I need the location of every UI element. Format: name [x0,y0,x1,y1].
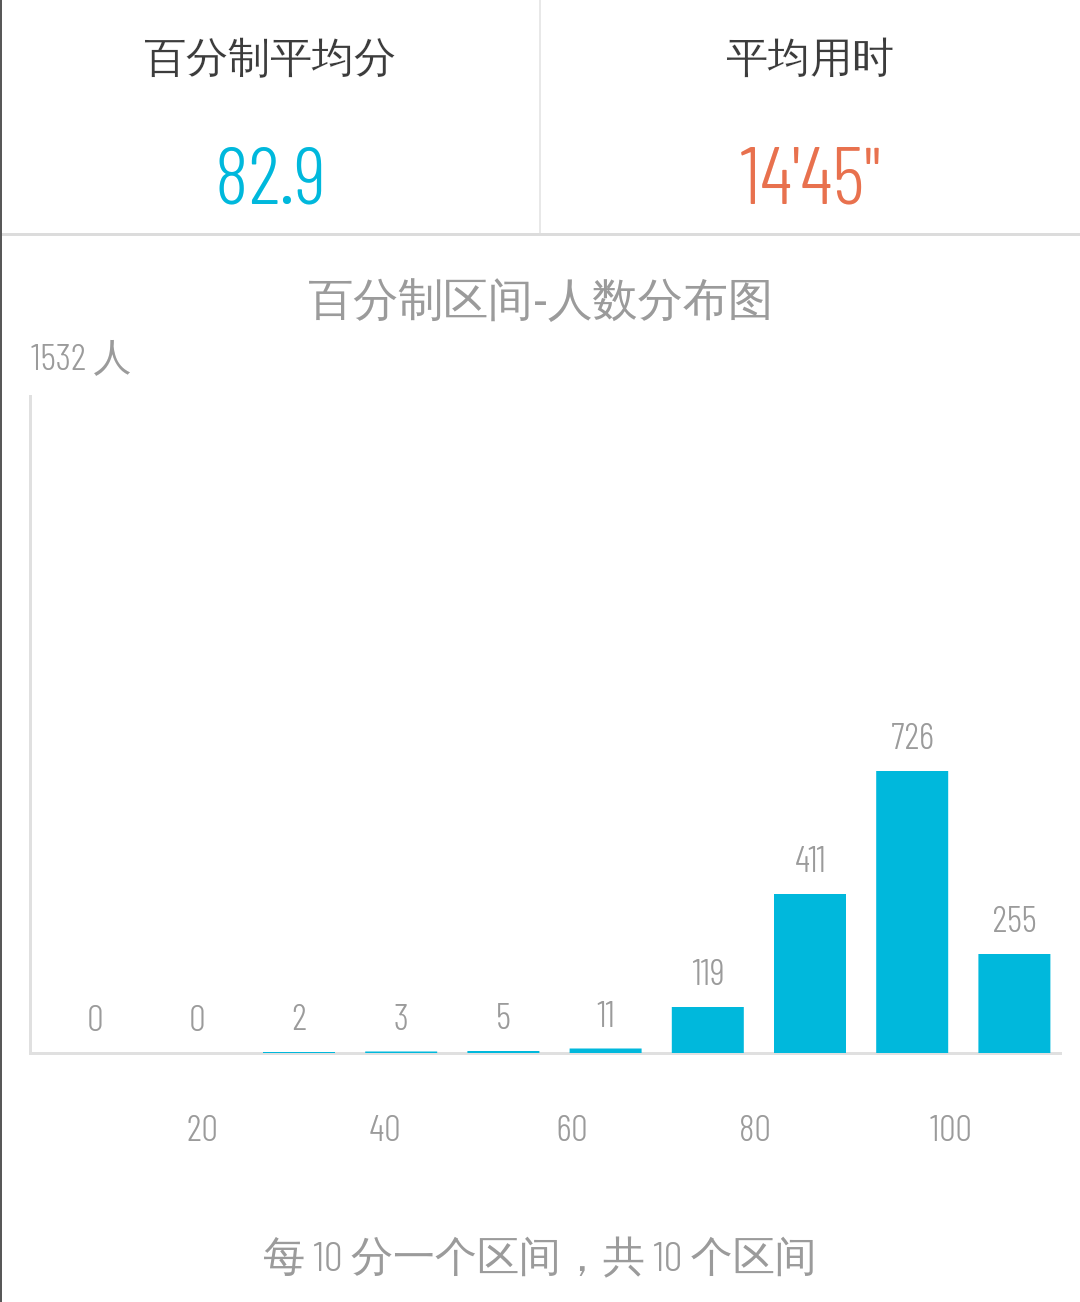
staticText: 百分制区间-人数分布图 [308,267,773,328]
staticText: 3 [394,993,409,1037]
staticText: 2 [292,993,307,1037]
staticText: 平均用时 [726,32,894,85]
staticText: 60 [556,1104,588,1148]
staticText: 11 [597,990,615,1034]
staticText: 80 [739,1104,771,1148]
staticText: 20 [187,1104,218,1148]
staticText: 14'45" [740,124,881,220]
button[interactable] [0,0,540,233]
staticText: 82.9 [215,124,326,220]
staticText: 726 [891,712,934,756]
staticText: 40 [369,1104,401,1148]
staticText: 0 [87,994,104,1038]
staticText: 5 [496,992,511,1036]
staticText: 百分制平均分 [144,32,396,85]
staticText: 1532 人 [31,332,132,381]
staticText: 119 [692,948,725,992]
staticText: 0 [189,994,206,1038]
staticText: 411 [795,835,826,879]
staticText: 100 [930,1104,972,1148]
staticText: 每 10 分一个区间，共 10 个区间 [263,1229,817,1283]
button[interactable] [540,0,1080,233]
staticText: 255 [992,895,1037,939]
